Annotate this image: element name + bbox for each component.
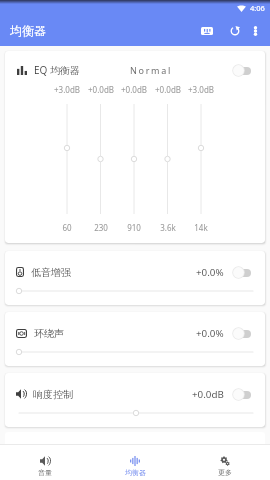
- staticText: 14k: [194, 222, 208, 233]
- staticText: +0.0dB: [192, 388, 224, 401]
- staticText: 均衡器: [10, 23, 46, 38]
- staticText: 60: [62, 222, 72, 233]
- staticText: 均衡器: [125, 468, 146, 477]
- staticText: +0.0dB: [155, 84, 181, 95]
- staticText: 环绕声: [34, 327, 64, 340]
- button[interactable]: 环绕声: [5, 312, 265, 366]
- button[interactable]: 音量: [0, 445, 90, 480]
- button[interactable]: 均衡器: [90, 445, 180, 480]
- button[interactable]: Toggle: [232, 388, 251, 401]
- staticText: 更多: [218, 468, 232, 477]
- button[interactable]: 更多: [180, 445, 270, 480]
- button[interactable]: 环绕声 level: [5, 344, 265, 360]
- staticText: +3.0dB: [188, 84, 214, 95]
- staticText: 响度控制: [33, 388, 73, 401]
- staticText: 音量: [38, 468, 52, 477]
- staticText: 低音增强: [31, 266, 71, 279]
- button[interactable]: 低音增强 level: [5, 283, 265, 299]
- staticText: +0.0%: [196, 266, 224, 279]
- staticText: +3.0dB: [54, 84, 80, 95]
- button[interactable]: Reset: [222, 15, 248, 46]
- button[interactable]: Band 910: [123, 99, 145, 221]
- staticText: 230: [94, 222, 108, 233]
- staticText: +0.0%: [196, 327, 224, 340]
- staticText: 3.6k: [160, 222, 176, 233]
- button[interactable]: 响度控制: [5, 373, 265, 427]
- button[interactable]: Toggle: [232, 266, 251, 279]
- button[interactable]: Presets: [195, 15, 218, 46]
- button[interactable]: Band 60: [56, 99, 78, 221]
- button[interactable]: 响度控制 level: [5, 405, 265, 421]
- button[interactable]: Band 14k: [190, 99, 212, 221]
- staticText: +0.0dB: [88, 84, 114, 95]
- staticText: 910: [127, 222, 141, 233]
- button[interactable]: Toggle: [232, 64, 251, 77]
- button[interactable]: Band 3.6k: [157, 99, 179, 221]
- staticText: EQ 均衡器: [34, 63, 80, 77]
- button[interactable]: Toggle: [232, 327, 251, 340]
- staticText: 4:06: [250, 3, 265, 13]
- button[interactable]: More options: [245, 15, 266, 46]
- staticText: +0.0dB: [121, 84, 147, 95]
- button[interactable]: Band 230: [90, 99, 112, 221]
- staticText: Normal: [130, 64, 172, 76]
- button[interactable]: 低音增强: [5, 251, 265, 305]
